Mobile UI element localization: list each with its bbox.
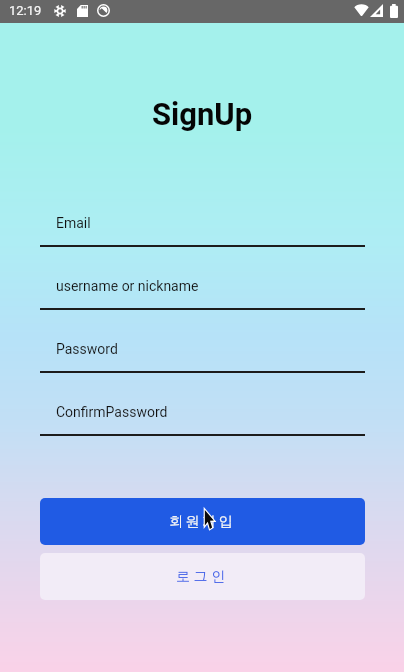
staticText: Email — [56, 215, 91, 231]
other: Wi-Fi — [354, 4, 369, 16]
other: Do not disturb — [97, 4, 110, 17]
button[interactable]: 로그인 — [40, 553, 365, 600]
staticText: 12:19 — [9, 3, 42, 18]
other: Mobile signal — [370, 4, 383, 17]
staticText: SignUp — [0, 96, 404, 132]
other: Settings — [54, 5, 66, 17]
button[interactable]: 회원가입 — [40, 498, 365, 545]
button[interactable]: Email — [40, 216, 365, 260]
other: Battery — [390, 4, 398, 18]
staticText: ConfirmPassword — [56, 404, 168, 420]
staticText: Password — [56, 341, 118, 357]
button[interactable]: ConfirmPassword — [40, 405, 365, 449]
other: SD card — [77, 5, 88, 17]
staticText: username or nickname — [56, 278, 199, 294]
button[interactable]: Password — [40, 342, 365, 386]
staticText: 회원가입 — [169, 513, 236, 531]
button[interactable]: username or nickname — [40, 279, 365, 323]
staticText: 로그인 — [176, 568, 229, 586]
